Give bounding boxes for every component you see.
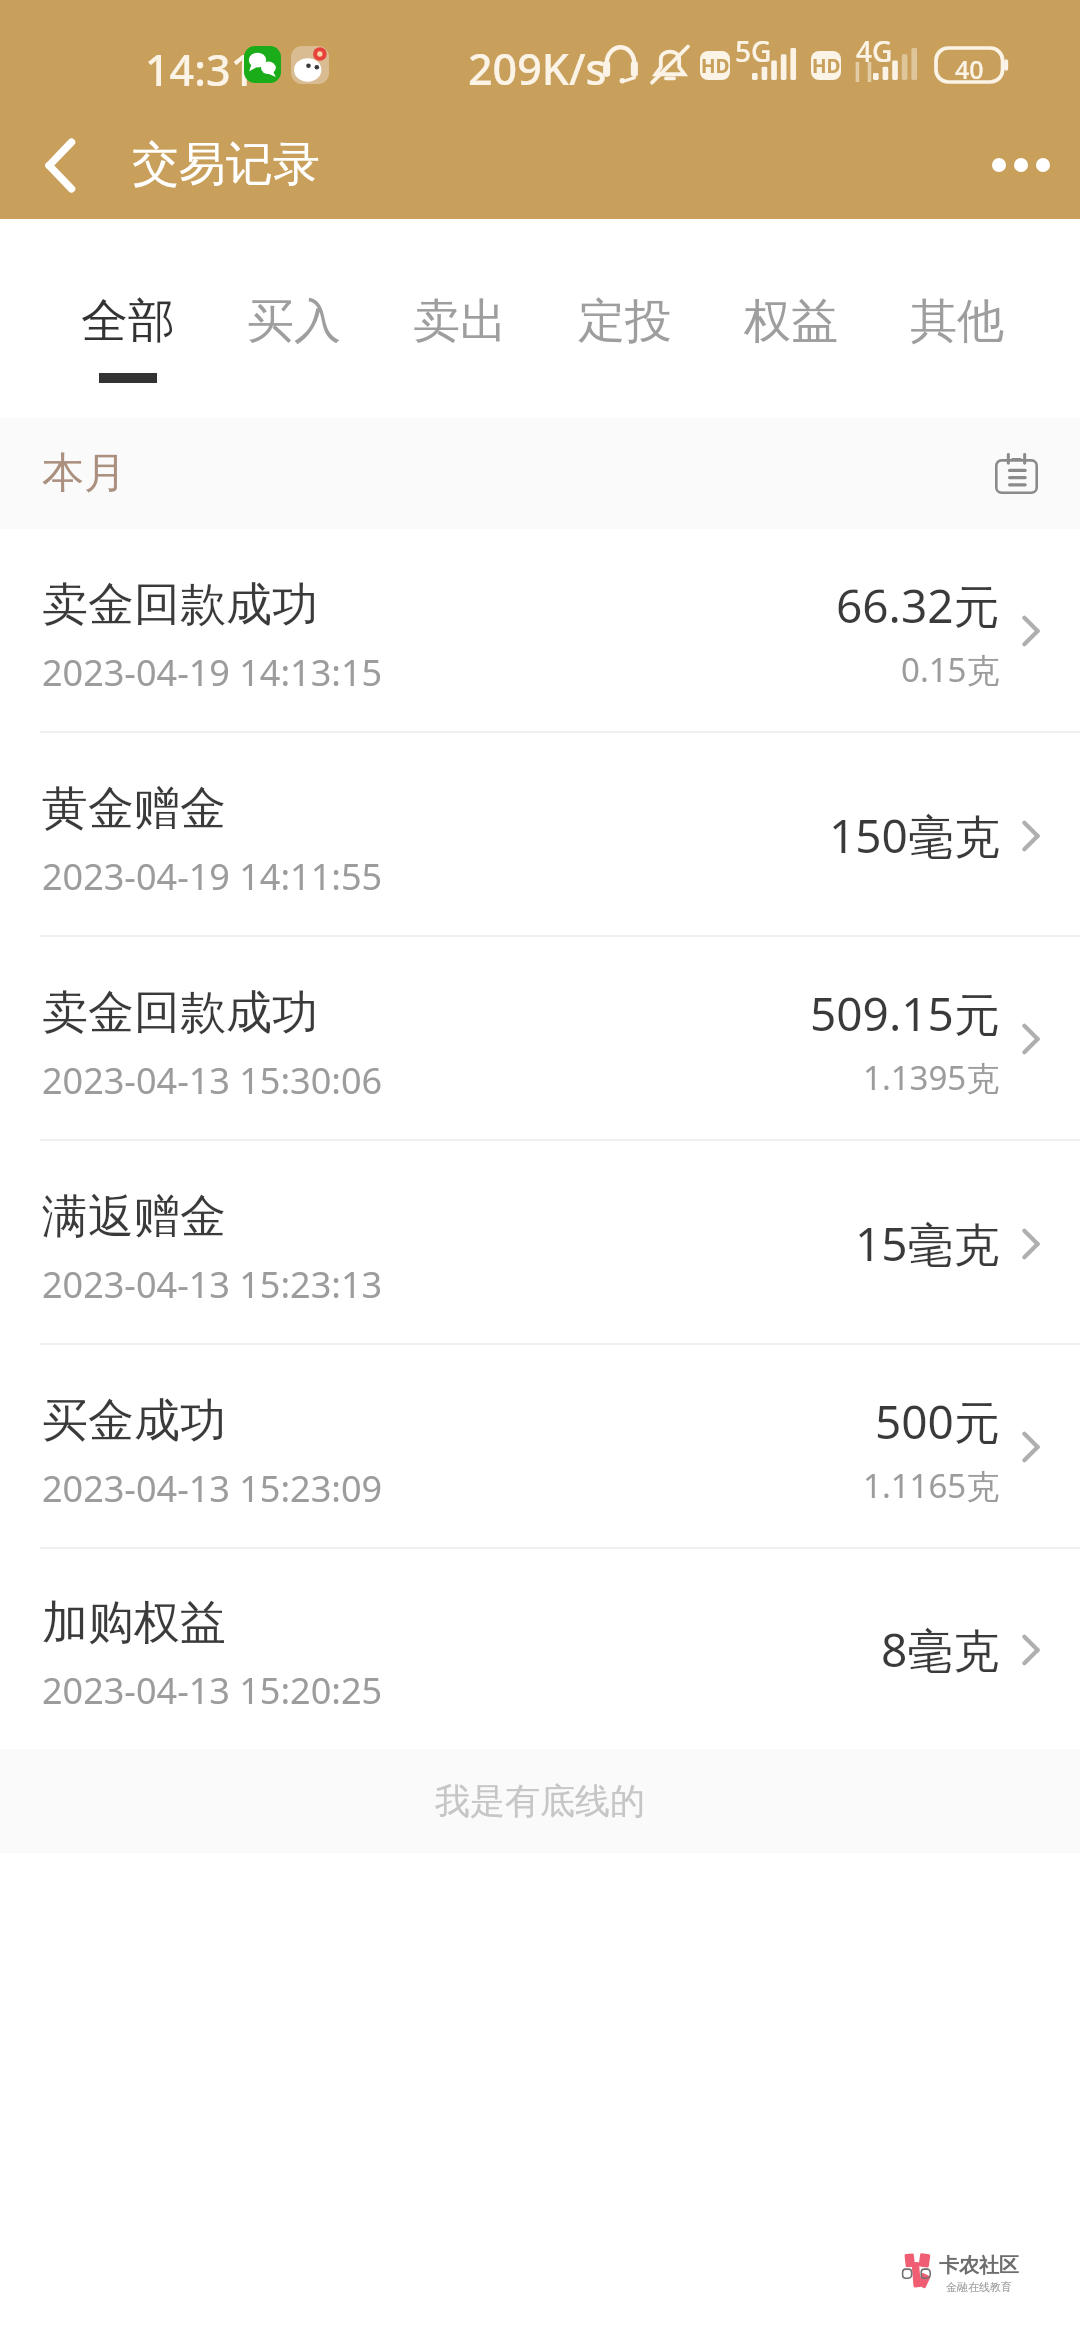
staticText: 卖出 xyxy=(413,292,507,351)
staticText: 2023-04-13 15:20:25 xyxy=(42,1666,383,1715)
staticText: 2023-04-19 14:11:55 xyxy=(42,852,383,901)
button[interactable]: 买入 xyxy=(247,219,341,418)
button[interactable]: 权益 xyxy=(744,219,838,418)
staticText: 全部 xyxy=(81,292,175,351)
staticText: 1.1395克 xyxy=(863,1055,1000,1100)
staticText: 交易记录 xyxy=(132,135,320,194)
staticText: 本月 xyxy=(42,447,126,500)
staticText: 买入 xyxy=(247,292,341,351)
staticText: 15毫克 xyxy=(855,1212,1000,1275)
staticText: 卡农社区 xyxy=(939,2253,1019,2278)
staticText: 权益 xyxy=(744,292,838,351)
staticText: 5G xyxy=(735,32,772,70)
staticText: 14:31 xyxy=(145,40,256,99)
button[interactable]: 卖金回款成功 xyxy=(0,937,1080,1141)
staticText: 2023-04-13 15:23:09 xyxy=(42,1464,383,1513)
staticText: 1.1165克 xyxy=(863,1463,1000,1508)
staticText: HD xyxy=(812,53,841,79)
staticText: 4G xyxy=(856,32,893,70)
button[interactable]: 黄金赠金 xyxy=(0,733,1080,937)
staticText: 加购权益 xyxy=(42,1594,226,1652)
staticText: 40 xyxy=(955,52,984,86)
button[interactable]: 定投 xyxy=(578,219,672,418)
staticText: 我是有底线的 xyxy=(435,1779,645,1823)
staticText: 卖金回款成功 xyxy=(42,984,318,1042)
staticText: 2023-04-13 15:30:06 xyxy=(42,1056,383,1105)
button[interactable]: 加购权益 xyxy=(0,1549,1080,1749)
staticText: 500元 xyxy=(875,1390,1000,1453)
button[interactable]: Filter records xyxy=(978,436,1054,512)
button[interactable]: 全部 xyxy=(81,219,175,418)
staticText: 0.15克 xyxy=(901,647,1000,692)
button[interactable]: Back xyxy=(14,119,106,211)
staticText: 满返赠金 xyxy=(42,1188,226,1246)
staticText: 209K/s xyxy=(468,39,607,98)
staticText: 定投 xyxy=(578,292,672,351)
staticText: 2023-04-13 15:23:13 xyxy=(42,1260,383,1309)
staticText: 66.32元 xyxy=(836,574,1000,637)
staticText: 509.15元 xyxy=(810,982,1000,1045)
button[interactable]: More options xyxy=(976,120,1066,210)
staticText: 其他 xyxy=(910,292,1004,351)
staticText: 2023-04-19 14:13:15 xyxy=(42,648,383,697)
button[interactable]: 买金成功 xyxy=(0,1345,1080,1549)
staticText: 买金成功 xyxy=(42,1392,226,1450)
button[interactable]: 卖出 xyxy=(413,219,507,418)
staticText: 卖金回款成功 xyxy=(42,576,318,634)
staticText: HD xyxy=(701,53,730,79)
button[interactable]: 满返赠金 xyxy=(0,1141,1080,1345)
staticText: 黄金赠金 xyxy=(42,780,226,838)
button[interactable]: 其他 xyxy=(910,219,1004,418)
staticText: 150毫克 xyxy=(829,804,1000,867)
staticText: 8毫克 xyxy=(881,1618,1000,1681)
button[interactable]: 卖金回款成功 xyxy=(0,529,1080,733)
staticText: 金融在线教育 xyxy=(946,2280,1012,2294)
